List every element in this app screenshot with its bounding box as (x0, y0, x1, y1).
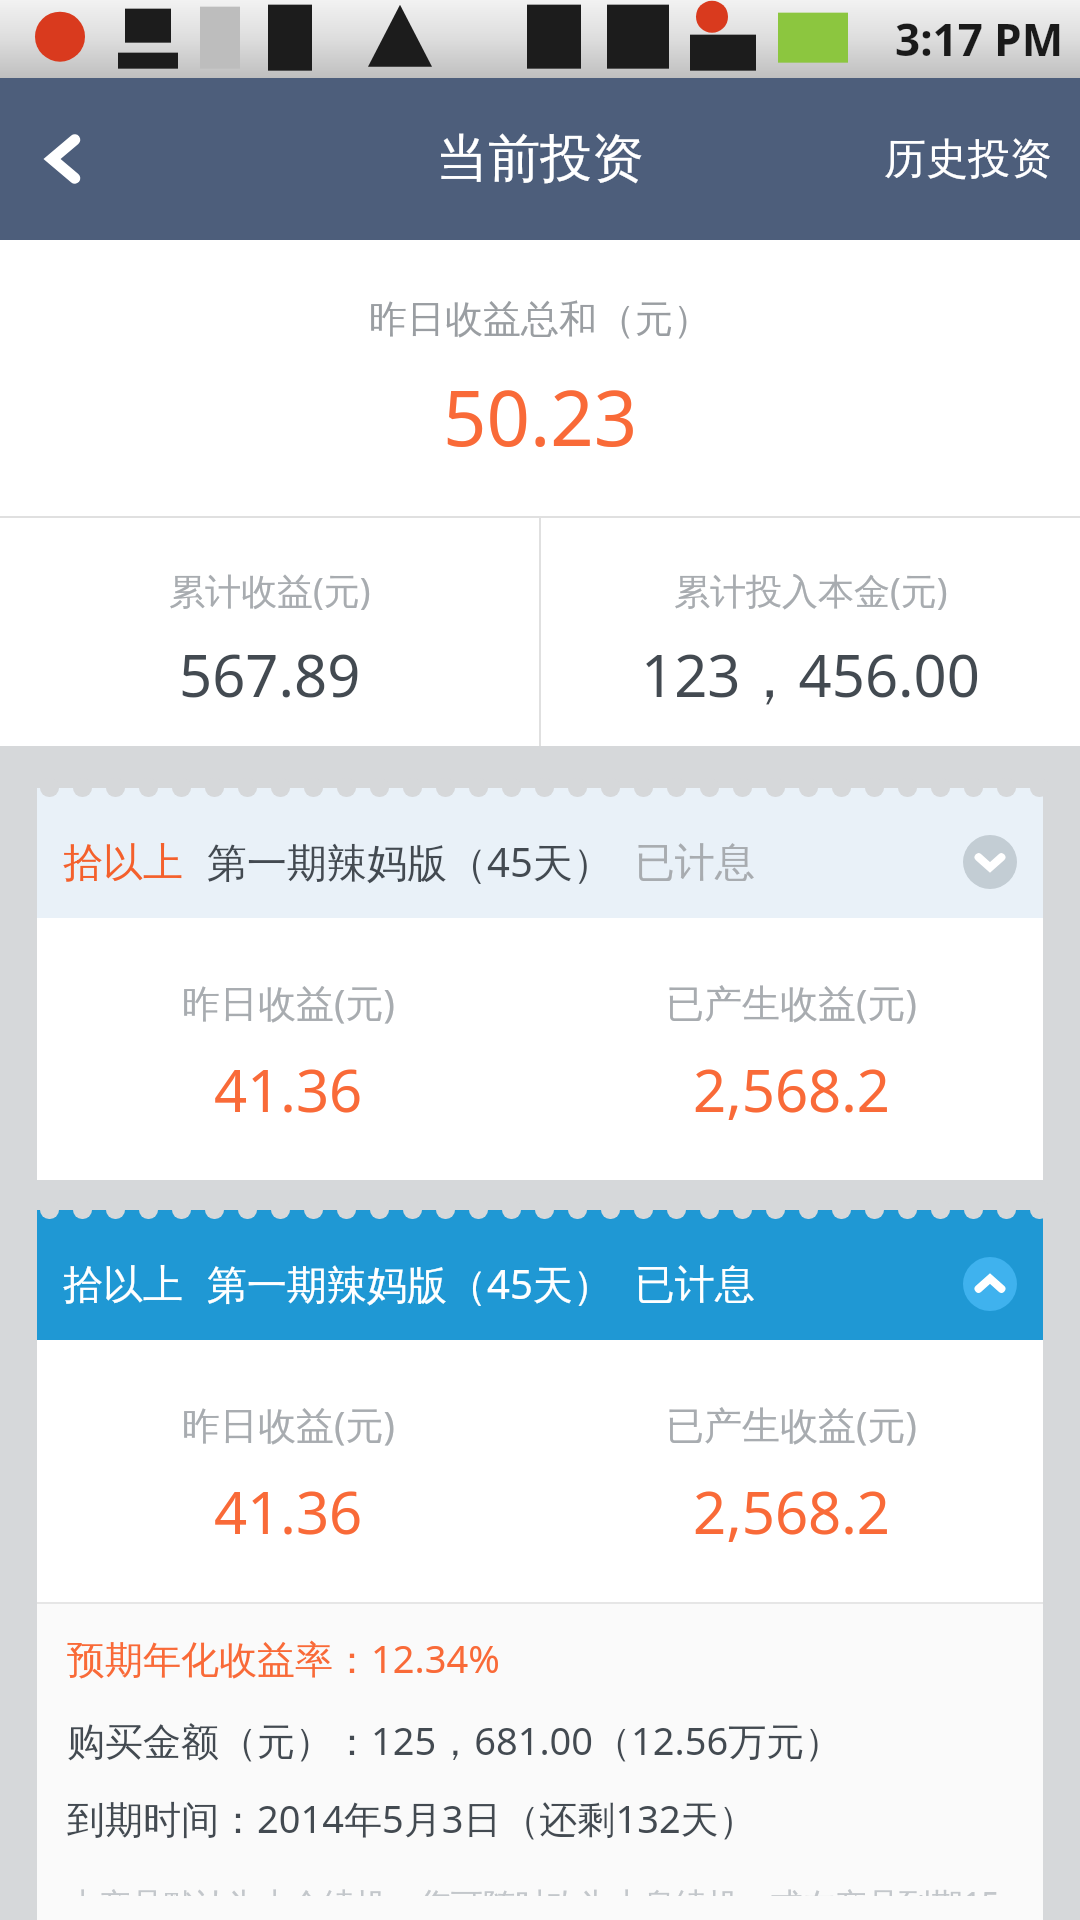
button[interactable]: 拾以上 (37, 1227, 1043, 1340)
staticText: 已计息 (635, 837, 755, 887)
staticText: 567.89 (179, 635, 361, 714)
staticText: 拾以上 (63, 837, 183, 887)
staticText: 123，456.00 (641, 635, 980, 714)
staticText: 已计息 (635, 1259, 755, 1309)
staticText: 已产生收益(元) (666, 1398, 917, 1450)
button[interactable]: 历史投资 (856, 78, 1080, 240)
staticText: 3:17 PM (895, 9, 1064, 69)
staticText: 2,568.2 (693, 1472, 890, 1551)
staticText: 50.23 (443, 365, 638, 469)
button[interactable]: 拾以上 (37, 805, 1043, 918)
staticText: 购买金额（元）：125，681.00（12.56万元） (67, 1714, 843, 1766)
staticText: 昨日收益总和（元） (369, 295, 711, 343)
staticText: 本产品默认为本金续投，您可随时改为本息续投，或在产品到期15 (67, 1882, 1000, 1896)
staticText: 41.36 (214, 1472, 363, 1551)
staticText: 预期年化收益率：12.34% (67, 1632, 500, 1684)
staticText: 41.36 (214, 1050, 363, 1129)
staticText: 累计投入本金(元) (674, 566, 948, 615)
button[interactable]: Expand (963, 835, 1017, 889)
staticText: 已产生收益(元) (666, 976, 917, 1028)
staticText: 当前投资 (436, 126, 644, 192)
staticText: 2,568.2 (693, 1050, 890, 1129)
staticText: 第一期辣妈版（45天） (207, 834, 613, 889)
staticText: 拾以上 (63, 1259, 183, 1309)
staticText: 到期时间：2014年5月3日（还剩132天） (67, 1792, 757, 1844)
button[interactable]: Back (0, 78, 128, 240)
staticText: 历史投资 (884, 133, 1052, 186)
button[interactable]: Collapse (963, 1257, 1017, 1311)
staticText: 累计收益(元) (169, 566, 371, 615)
staticText: 昨日收益(元) (182, 976, 395, 1028)
staticText: 第一期辣妈版（45天） (207, 1256, 613, 1311)
staticText: 昨日收益(元) (182, 1398, 395, 1450)
